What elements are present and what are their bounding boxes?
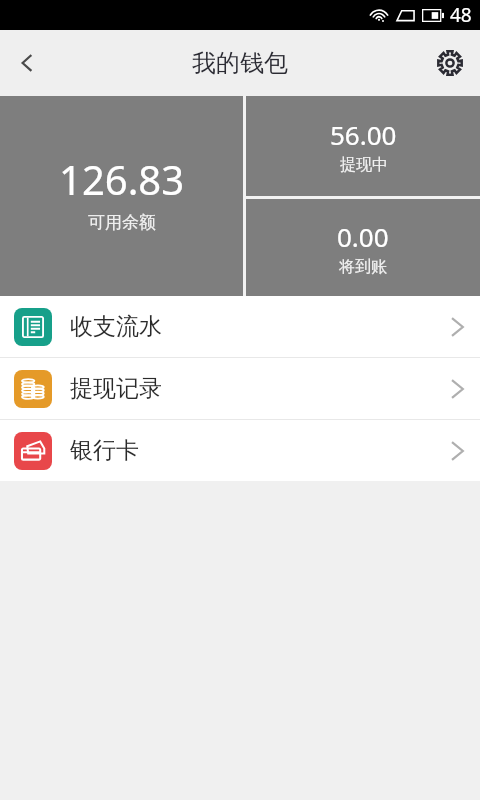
button[interactable]: 银行卡 [0, 420, 480, 481]
staticText: 48 [450, 2, 472, 28]
staticText: 可用余额 [88, 212, 156, 233]
staticText: 56.00 [330, 117, 397, 152]
staticText: 银行卡 [70, 436, 139, 465]
staticText: 收支流水 [70, 312, 162, 341]
button[interactable]: 126.83 [0, 96, 243, 296]
button[interactable]: 收支流水 [0, 296, 480, 357]
button[interactable]: Settings [420, 33, 480, 93]
button[interactable]: 0.00 [246, 199, 480, 296]
staticText: 提现中 [340, 155, 388, 175]
staticText: 我的钱包 [192, 48, 288, 78]
staticText: 将到账 [339, 257, 387, 277]
staticText: 0.00 [337, 219, 389, 254]
staticText: 126.83 [59, 152, 185, 206]
button[interactable]: Back [0, 36, 54, 90]
button[interactable]: 56.00 [246, 96, 480, 196]
staticText: 提现记录 [70, 374, 162, 403]
button[interactable]: 提现记录 [0, 358, 480, 419]
